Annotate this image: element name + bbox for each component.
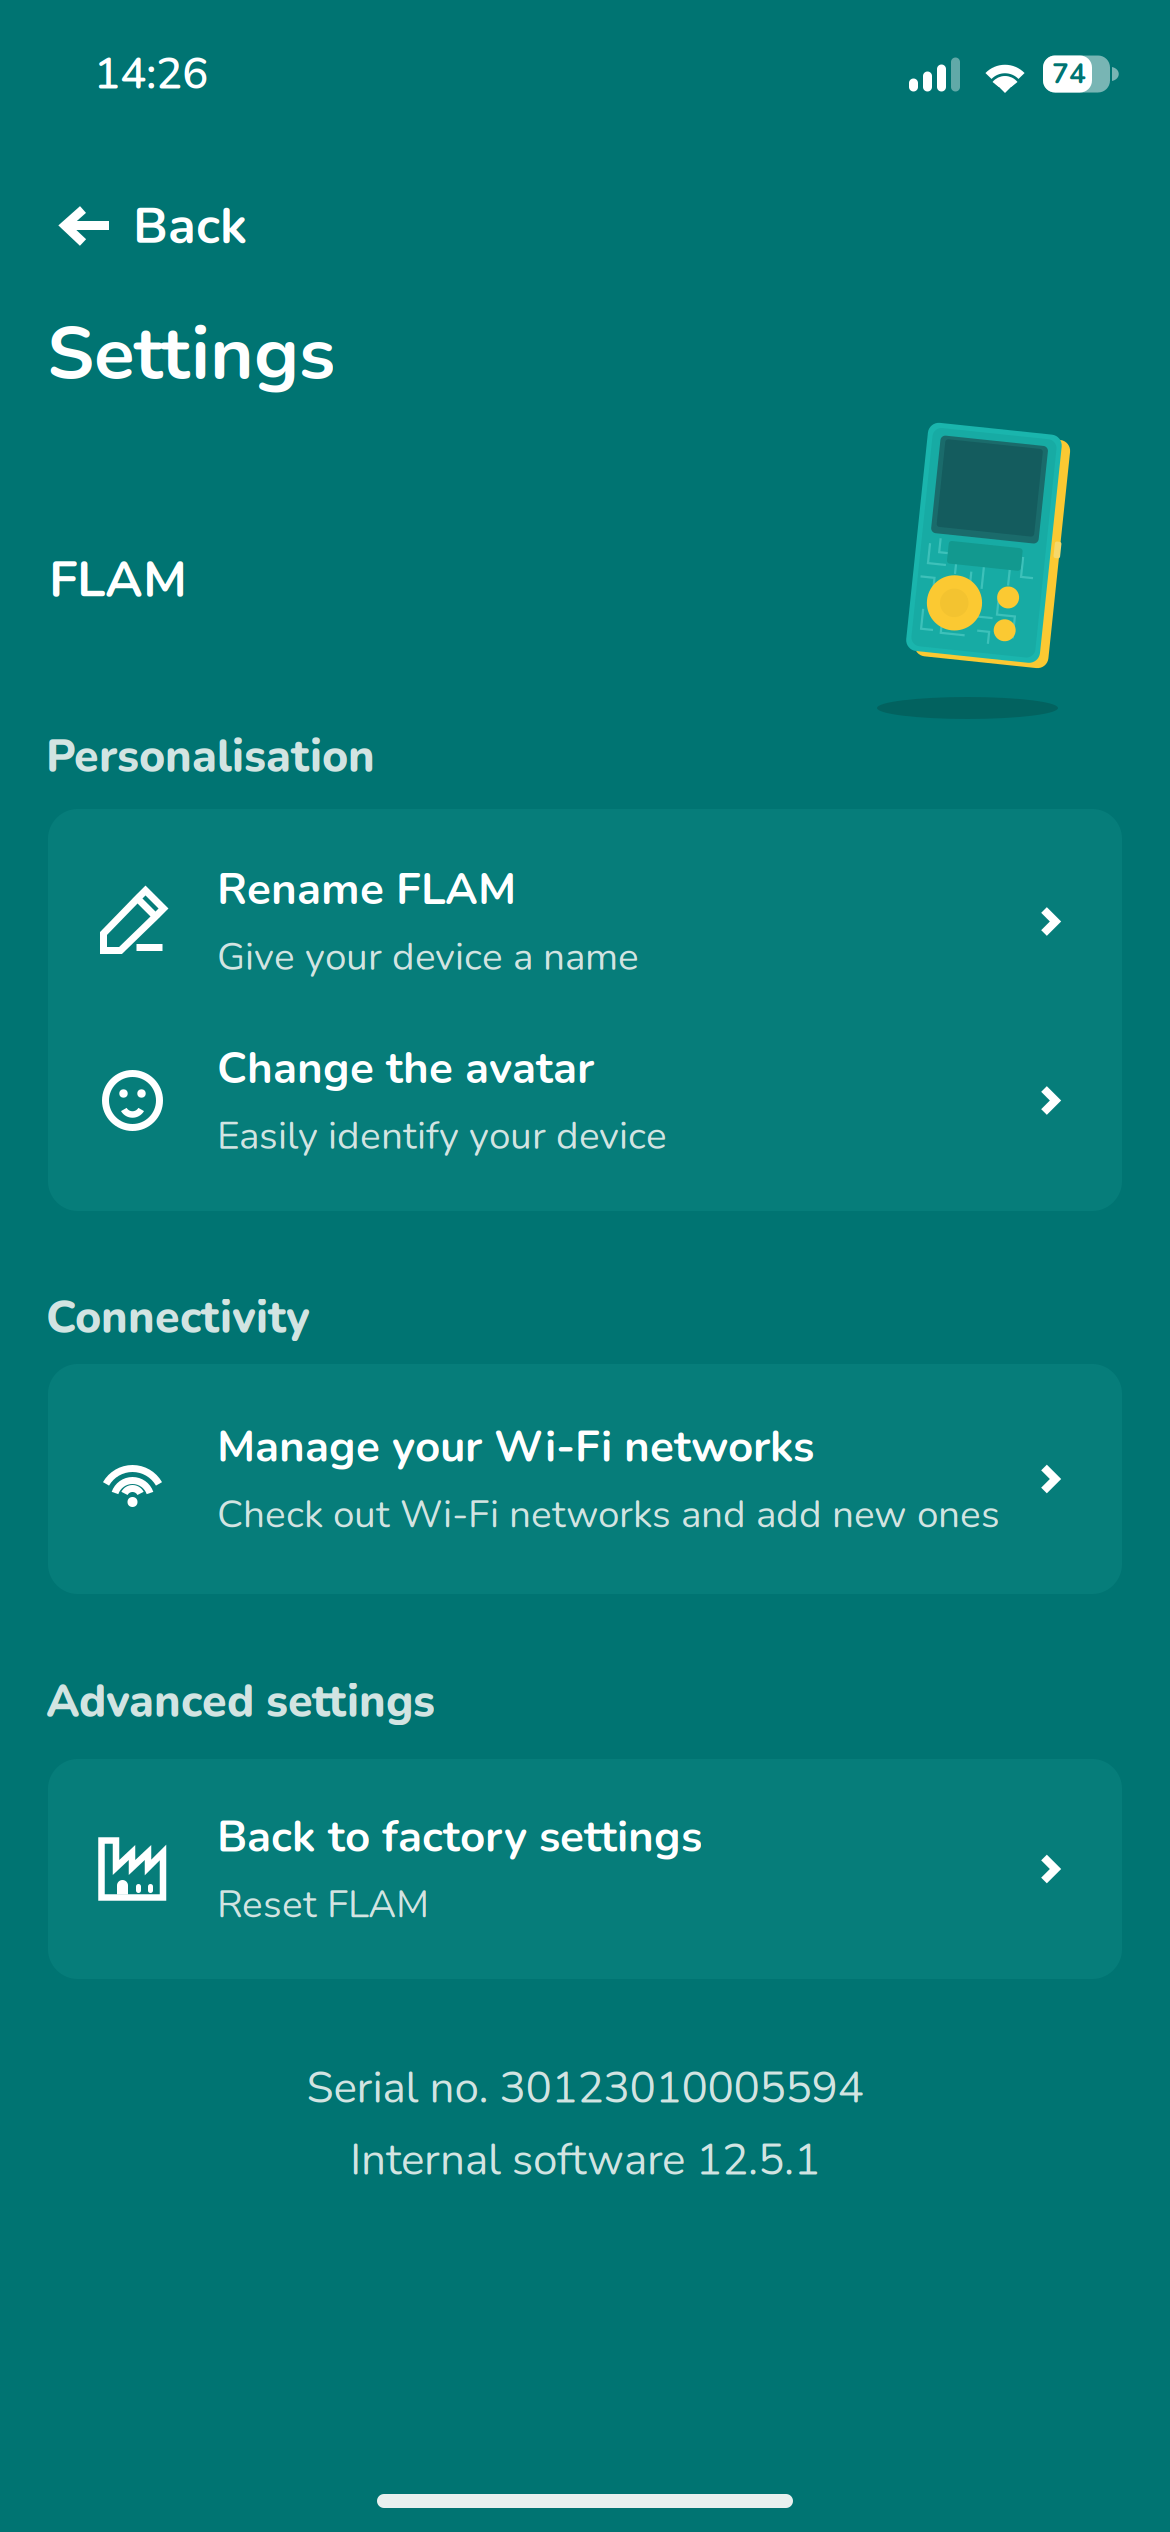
button[interactable]: Back <box>0 186 287 266</box>
staticText: Back to factory settings <box>217 1807 702 1867</box>
staticText: FLAM <box>49 545 187 614</box>
staticText: 74 <box>1052 55 1086 93</box>
staticText: Easily identify your device <box>217 1110 667 1162</box>
staticText: Back <box>133 191 247 260</box>
staticText: Rename FLAM <box>217 860 516 920</box>
staticText: Give your device a name <box>217 931 639 983</box>
staticText: Reset FLAM <box>217 1878 429 1931</box>
staticText: Internal software 12.5.1 <box>350 2130 820 2190</box>
staticText: Personalisation <box>46 726 375 787</box>
staticText: Advanced settings <box>46 1671 435 1732</box>
staticText: Change the avatar <box>217 1039 594 1099</box>
button[interactable]: Change the avatar <box>48 1000 1122 1201</box>
staticText: 14:26 <box>94 44 208 104</box>
button[interactable]: Back to factory settings <box>48 1759 1122 1979</box>
staticText: Settings <box>47 303 335 405</box>
button[interactable]: Rename FLAM <box>48 821 1122 1022</box>
button[interactable]: Manage your Wi-Fi networks <box>48 1364 1122 1594</box>
staticText: Connectivity <box>46 1287 310 1348</box>
staticText: Manage your Wi-Fi networks <box>217 1417 814 1477</box>
staticText: Serial no. 30123010005594 <box>306 2058 863 2118</box>
staticText: Check out Wi-Fi networks and add new one… <box>217 1488 1000 1541</box>
